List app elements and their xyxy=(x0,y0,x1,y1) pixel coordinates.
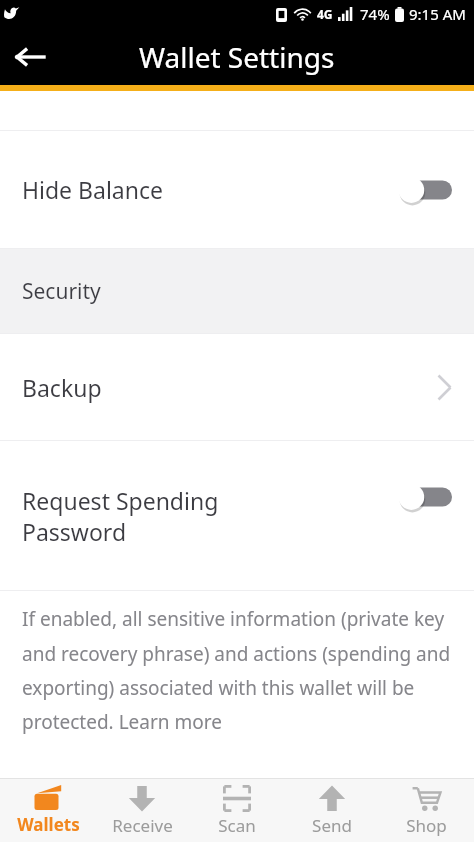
staticText: Scan xyxy=(218,814,256,837)
button[interactable]: Shop xyxy=(379,779,473,842)
staticText: Shop xyxy=(406,814,447,837)
staticText: Wallet Settings xyxy=(139,38,335,76)
staticText: Receive xyxy=(112,814,173,837)
button[interactable]: Toggle switch xyxy=(398,483,452,511)
button[interactable]: Request Spending xyxy=(0,441,474,590)
staticText: 74% xyxy=(360,4,390,24)
button[interactable]: Back xyxy=(0,28,60,85)
staticText: 9:15 AM xyxy=(409,4,466,24)
staticText: Request Spending xyxy=(22,485,219,516)
staticText: If enabled, all sensitive information (p… xyxy=(22,606,452,734)
button[interactable]: Hide Balance xyxy=(0,131,474,248)
button[interactable]: Send xyxy=(285,779,379,842)
staticText: Backup xyxy=(22,372,437,403)
staticText: Wallets xyxy=(17,813,80,836)
button[interactable]: Receive xyxy=(95,779,189,842)
button[interactable]: Wallets xyxy=(1,779,95,842)
button[interactable]: Backup xyxy=(0,334,474,440)
staticText: Send xyxy=(312,814,352,837)
staticText: Security xyxy=(22,277,101,306)
button[interactable]: Scan xyxy=(190,779,284,842)
staticText: 4G xyxy=(317,6,333,22)
button[interactable]: Toggle switch xyxy=(398,176,452,204)
staticText: Password xyxy=(22,516,127,547)
staticText: Hide Balance xyxy=(22,174,398,205)
